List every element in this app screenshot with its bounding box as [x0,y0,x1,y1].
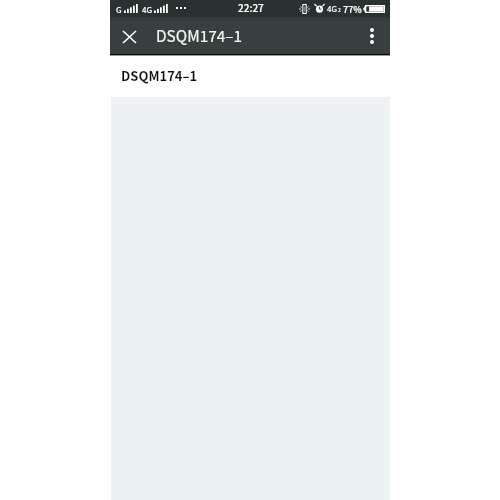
button[interactable]: Close [114,20,144,50]
staticText: DSQM174–1 [156,24,243,46]
staticText: 4G [142,3,153,15]
button[interactable]: More options [357,20,387,50]
staticText: G [116,3,122,15]
staticText: 22:27 [238,0,264,14]
staticText: DSQM174–1 [121,66,198,85]
staticText: 4G [327,3,337,15]
staticText: 2 [338,6,341,13]
staticText: 77% [343,3,362,16]
